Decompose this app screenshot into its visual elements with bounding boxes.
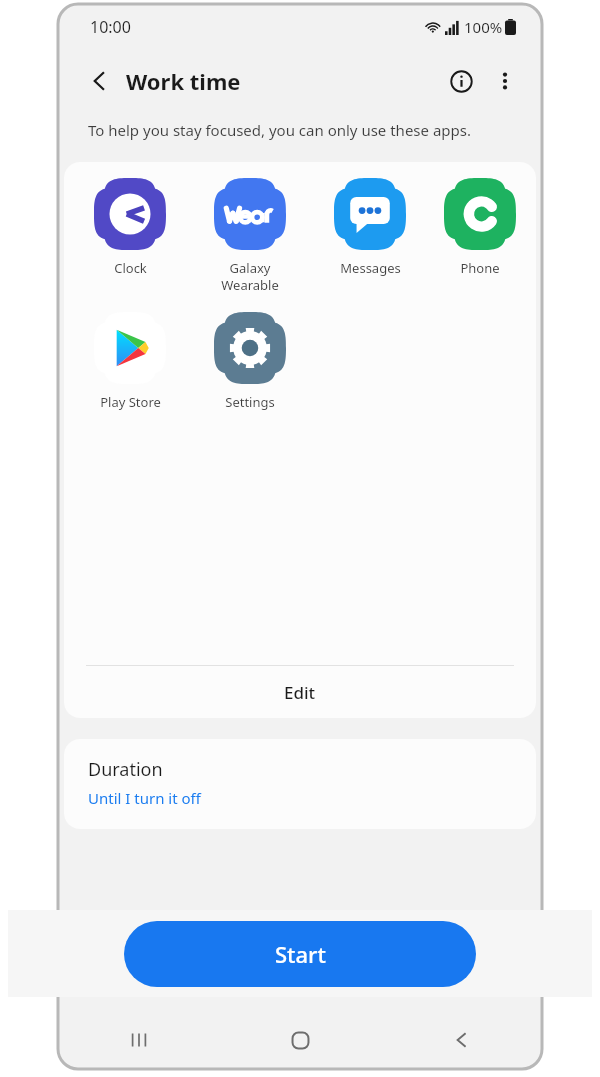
button[interactable]: Phone <box>430 176 530 277</box>
staticText: Work time <box>126 66 241 96</box>
button[interactable]: Messages <box>310 176 430 277</box>
button[interactable]: Back <box>78 59 122 103</box>
button[interactable]: Home <box>220 1011 381 1069</box>
button[interactable]: Information <box>438 58 484 104</box>
staticText: Clock <box>114 259 147 277</box>
button[interactable]: Start <box>124 921 476 987</box>
staticText: Phone <box>460 259 500 277</box>
staticText: Until I turn it off <box>88 788 201 808</box>
staticText: Start <box>275 939 326 969</box>
button[interactable]: More options <box>484 60 526 102</box>
button[interactable]: Back <box>381 1011 542 1069</box>
button[interactable]: Play Store <box>70 310 190 411</box>
staticText: Settings <box>225 393 275 411</box>
staticText: Messages <box>340 259 401 277</box>
button[interactable]: Settings <box>190 310 310 411</box>
button[interactable]: Recent apps <box>58 1011 220 1069</box>
staticText: 100% <box>464 17 503 37</box>
button[interactable]: Edit <box>64 666 536 718</box>
staticText: 10:00 <box>90 16 131 38</box>
button[interactable]: Galaxy Wearable <box>190 176 310 294</box>
staticText: Play Store <box>100 393 161 411</box>
staticText: Edit <box>284 681 316 704</box>
staticText: Duration <box>88 757 163 782</box>
staticText: To help you stay focused, you can only u… <box>88 120 471 140</box>
button[interactable]: Duration <box>64 739 536 829</box>
button[interactable]: Clock <box>70 176 190 277</box>
staticText: Galaxy Wearable <box>221 259 279 294</box>
